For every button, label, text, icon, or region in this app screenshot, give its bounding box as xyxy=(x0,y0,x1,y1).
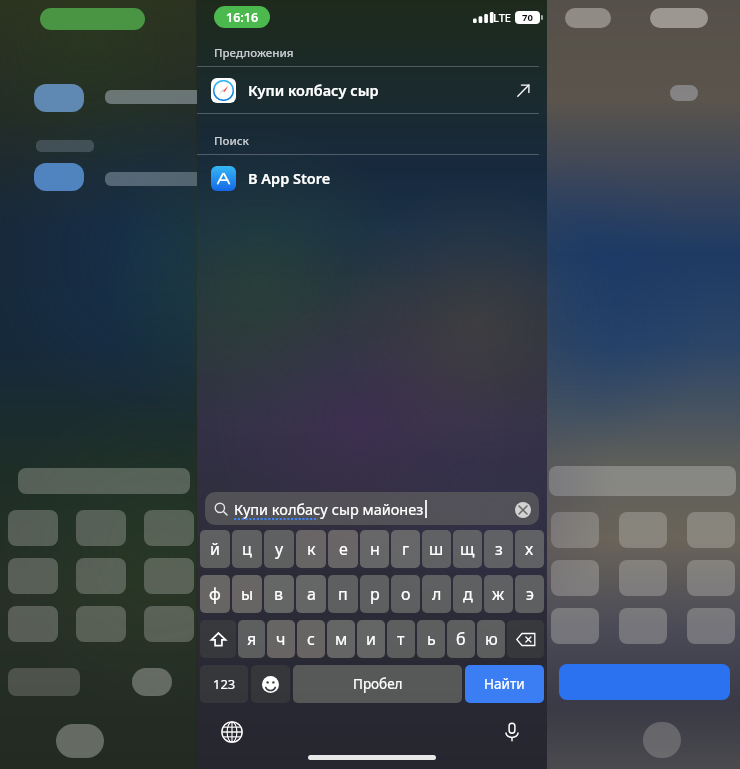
staticText: 70 xyxy=(522,11,533,24)
staticText: Купи колбасу сыр xyxy=(248,80,516,100)
staticText: ю xyxy=(485,628,498,650)
button[interactable]: н xyxy=(360,530,389,568)
button[interactable]: Change keyboard language xyxy=(217,717,247,747)
button[interactable]: Key xyxy=(507,620,544,658)
staticText: т xyxy=(397,628,405,650)
staticText: м xyxy=(335,628,348,650)
button[interactable]: ж xyxy=(484,575,513,613)
staticText: э xyxy=(526,583,534,605)
staticText: з xyxy=(495,538,503,560)
button[interactable]: р xyxy=(360,575,389,613)
button[interactable]: г xyxy=(391,530,420,568)
staticText: Купи колбасу xyxy=(234,499,328,519)
button[interactable]: Dictation xyxy=(497,717,527,747)
button[interactable]: у xyxy=(264,530,294,568)
button[interactable]: з xyxy=(484,530,513,568)
staticText: г xyxy=(402,538,410,560)
button[interactable]: Купи колбасу сыр xyxy=(197,67,547,113)
button[interactable]: Купи колбасу xyxy=(205,492,539,525)
staticText: к xyxy=(307,538,316,560)
button[interactable]: В App Store xyxy=(197,155,547,201)
staticText: и xyxy=(366,628,376,650)
button[interactable]: я xyxy=(238,620,265,658)
staticText: е xyxy=(339,538,348,560)
button[interactable]: ф xyxy=(200,575,230,613)
button[interactable]: Пробел xyxy=(293,665,462,703)
button[interactable]: Clear text xyxy=(514,501,531,518)
staticText: Пробел xyxy=(353,675,403,693)
button[interactable]: 123 xyxy=(200,665,248,703)
button[interactable]: в xyxy=(264,575,294,613)
staticText: 123 xyxy=(213,675,236,693)
staticText: ы xyxy=(241,583,254,605)
staticText: LTE xyxy=(493,10,511,25)
staticText: 16:16 xyxy=(226,9,259,26)
staticText: Предложения xyxy=(214,45,294,61)
button[interactable]: ь xyxy=(417,620,445,658)
button[interactable]: е xyxy=(328,530,358,568)
staticText: ф xyxy=(209,583,221,605)
staticText: ь xyxy=(427,628,436,650)
staticText: ш xyxy=(429,538,444,560)
staticText: й xyxy=(210,538,220,560)
staticText: б xyxy=(456,628,466,650)
button[interactable]: т xyxy=(387,620,415,658)
staticText: я xyxy=(247,628,257,650)
staticText: у xyxy=(275,538,284,560)
button[interactable]: щ xyxy=(453,530,482,568)
button[interactable]: о xyxy=(391,575,420,613)
staticText: Найти xyxy=(484,675,525,693)
staticText: д xyxy=(463,583,473,605)
button[interactable]: к xyxy=(296,530,326,568)
staticText: щ xyxy=(460,538,475,560)
button[interactable]: л xyxy=(422,575,451,613)
staticText: р xyxy=(370,583,380,605)
staticText: ч xyxy=(276,628,286,650)
staticText: х xyxy=(525,538,534,560)
staticText: ц xyxy=(242,538,252,560)
staticText: л xyxy=(432,583,442,605)
button[interactable]: Emoji xyxy=(251,665,290,703)
button[interactable]: ю xyxy=(477,620,505,658)
button[interactable]: д xyxy=(453,575,482,613)
staticText: в xyxy=(274,583,284,605)
button[interactable]: Найти xyxy=(465,665,544,703)
staticText: сыр майонез xyxy=(328,499,424,519)
staticText: а xyxy=(307,583,316,605)
staticText: Поиск xyxy=(214,133,249,149)
button[interactable]: м xyxy=(327,620,355,658)
button[interactable]: б xyxy=(447,620,475,658)
staticText: с xyxy=(307,628,315,650)
button[interactable]: э xyxy=(515,575,544,613)
button[interactable]: ш xyxy=(422,530,451,568)
staticText: о xyxy=(401,583,411,605)
button[interactable]: х xyxy=(515,530,544,568)
button[interactable]: ы xyxy=(232,575,262,613)
button[interactable]: с xyxy=(297,620,325,658)
button[interactable]: ц xyxy=(232,530,262,568)
staticText: В App Store xyxy=(248,168,531,188)
staticText: ж xyxy=(492,583,505,605)
button[interactable]: и xyxy=(357,620,385,658)
button[interactable]: а xyxy=(296,575,326,613)
button[interactable]: й xyxy=(200,530,230,568)
button[interactable]: п xyxy=(328,575,358,613)
button[interactable]: Key xyxy=(200,620,236,658)
staticText: н xyxy=(370,538,380,560)
staticText: п xyxy=(338,583,348,605)
button[interactable]: ч xyxy=(267,620,295,658)
